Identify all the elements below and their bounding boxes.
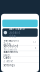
staticText: Main balance	[8, 27, 25, 31]
staticText: Cards	[3, 56, 10, 59]
staticText: Transactions	[3, 39, 18, 42]
staticText: 3	[35, 46, 37, 50]
staticText: This week	[3, 48, 16, 51]
button[interactable]: Settings	[1, 63, 39, 68]
staticText: 12	[33, 40, 37, 44]
staticText: Updated today	[8, 31, 20, 38]
staticText: Statements	[3, 50, 17, 54]
button[interactable]: Transactions	[1, 40, 39, 45]
button[interactable]: Statements	[1, 51, 39, 57]
staticText: March	[3, 54, 10, 57]
button[interactable]: Scheduled	[1, 45, 39, 51]
staticText: 2 active	[3, 59, 13, 63]
staticText: Today	[3, 42, 10, 46]
staticText: Scheduled	[3, 44, 18, 48]
staticText: Settings	[3, 63, 14, 67]
button[interactable]: Cards	[1, 57, 39, 63]
